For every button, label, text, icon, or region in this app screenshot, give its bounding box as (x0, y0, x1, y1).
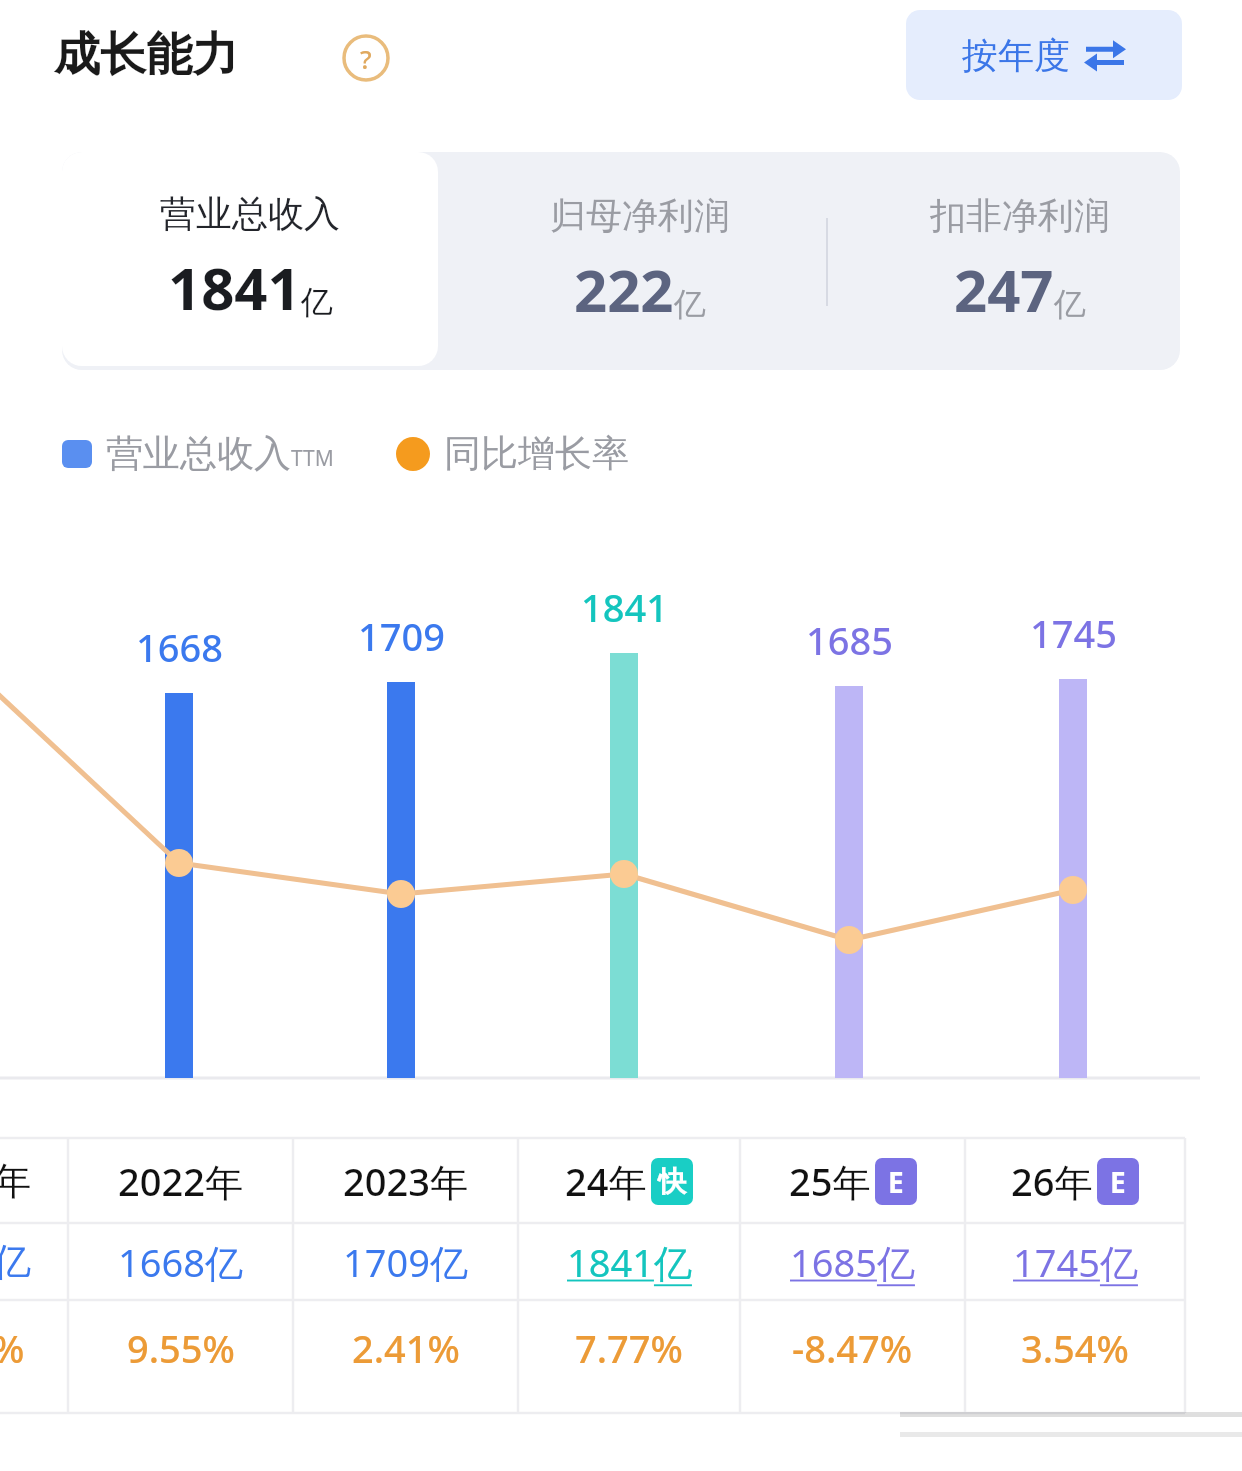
button[interactable]: 按年度 (906, 10, 1182, 100)
button[interactable]: 24年 (518, 1138, 740, 1223)
staticText: 24年 (565, 1155, 647, 1207)
button[interactable]: Help (342, 34, 390, 82)
button[interactable]: 1685亿 (740, 1223, 965, 1300)
staticText: 营业总收入 (106, 430, 291, 477)
staticText: 1841 (581, 581, 668, 633)
button[interactable]: 营业总收入 (62, 152, 438, 366)
staticText: 成长能力 (54, 26, 238, 84)
button[interactable]: 1709亿 (293, 1223, 518, 1300)
staticText: 2022年 (118, 1155, 243, 1207)
button[interactable]: 2022年 (68, 1138, 293, 1223)
staticText: 1745亿 (1013, 1236, 1138, 1288)
staticText: -8.47% (792, 1322, 913, 1374)
staticText: 2.41% (352, 1322, 460, 1374)
staticText: 222 (574, 250, 674, 329)
button[interactable]: 归母净利润 (470, 152, 810, 370)
staticText: 同比增长率 (444, 430, 629, 477)
button[interactable]: 26年 (965, 1138, 1185, 1223)
button[interactable]: 1745亿 (965, 1223, 1185, 1300)
staticText: 亿 (1054, 284, 1086, 324)
button[interactable]: 扣非净利润 (850, 152, 1190, 370)
button[interactable]: 1668亿 (68, 1223, 293, 1300)
staticText: 7.77% (575, 1322, 683, 1374)
staticText: 26年 (1011, 1155, 1093, 1207)
staticText: 3.54% (1021, 1322, 1129, 1374)
staticText: 1841亿 (567, 1236, 692, 1288)
staticText: 营业总收入 (160, 191, 340, 236)
staticText: 1668 (136, 621, 223, 673)
staticText: 1709亿 (343, 1236, 468, 1288)
staticText: 9.55% (127, 1322, 235, 1374)
staticText: 1685 (806, 614, 893, 666)
button[interactable]: 2023年 (293, 1138, 518, 1223)
staticText: 亿 (0, 1238, 31, 1286)
staticText: % (0, 1322, 25, 1374)
button[interactable]: 1841亿 (518, 1223, 740, 1300)
staticText: E (1110, 1163, 1126, 1201)
staticText: 扣非净利润 (930, 193, 1110, 238)
staticText: TTM (291, 444, 334, 473)
staticText: 快 (658, 1164, 686, 1199)
button[interactable]: 25年 (740, 1138, 965, 1223)
staticText: 按年度 (962, 33, 1070, 78)
staticText: 1745 (1030, 607, 1117, 659)
staticText: 归母净利润 (550, 193, 730, 238)
staticText: 1685亿 (790, 1236, 915, 1288)
staticText: 25年 (789, 1155, 871, 1207)
staticText: 亿 (301, 282, 333, 322)
staticText: 1668亿 (118, 1236, 243, 1288)
staticText: 年 (0, 1157, 31, 1205)
staticText: E (888, 1163, 904, 1201)
staticText: 1709 (358, 610, 445, 662)
staticText: ? (360, 41, 372, 76)
staticText: 2023年 (343, 1155, 468, 1207)
staticText: 亿 (674, 284, 706, 324)
staticText: 1841 (168, 248, 301, 327)
staticText: 247 (954, 250, 1054, 329)
